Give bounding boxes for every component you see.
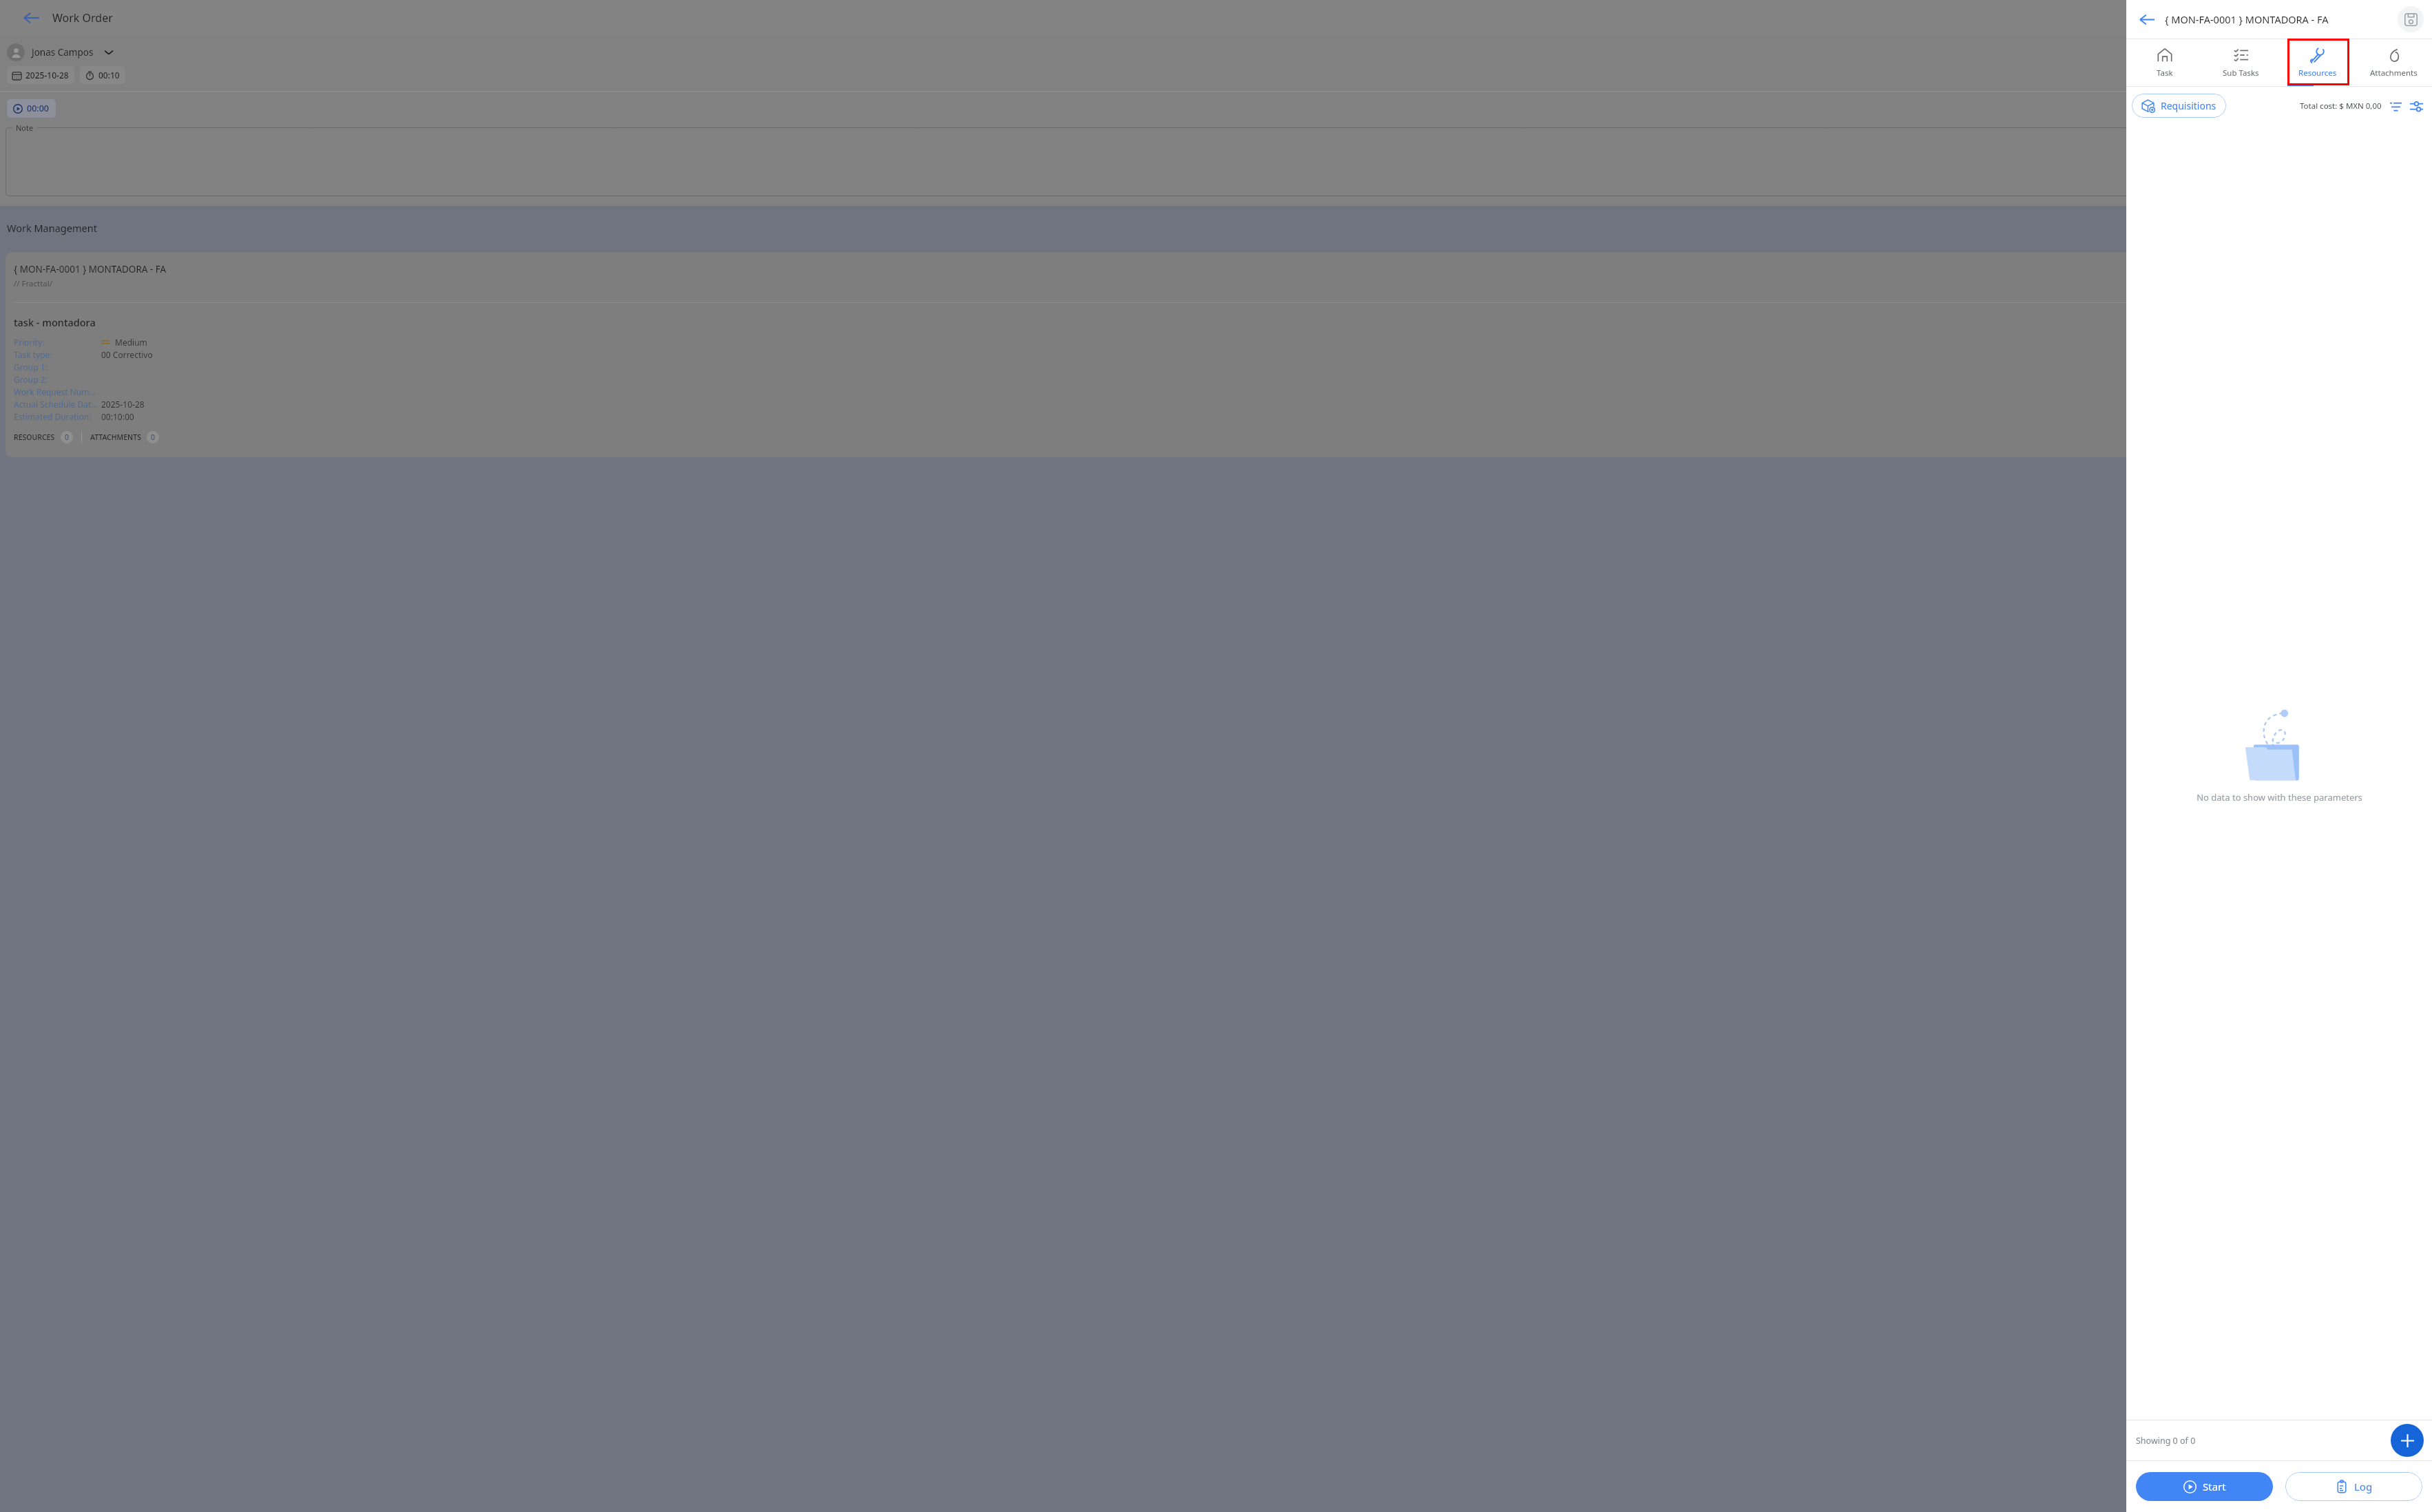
staticText: Actual Schedule Dat…	[14, 399, 98, 410]
button[interactable]: Back	[19, 6, 44, 30]
staticText: Showing 0 of 0	[2136, 1435, 2196, 1447]
staticText: Group 1:	[14, 361, 48, 372]
button[interactable]: Attachments	[2356, 39, 2432, 86]
staticText: 00:10:00	[101, 411, 134, 422]
staticText: Jonas Campos	[32, 46, 94, 59]
staticText: Sub Tasks	[2223, 67, 2259, 78]
button[interactable]: Sort	[2387, 97, 2404, 115]
staticText: Group 2:	[14, 374, 48, 385]
button[interactable]: Start	[2136, 1472, 2273, 1501]
button[interactable]: Add	[2391, 1424, 2424, 1457]
button[interactable]: 00:00	[7, 99, 56, 118]
button[interactable]: Requisitions	[2132, 94, 2226, 118]
staticText: Total cost: $ MXN 0,00	[2300, 101, 2382, 112]
button[interactable]: Task	[2126, 39, 2203, 86]
staticText: Priority:	[14, 337, 45, 348]
button[interactable]: Log	[2285, 1472, 2422, 1501]
staticText: Resources	[2298, 67, 2337, 78]
staticText: Attachments	[2370, 67, 2418, 78]
staticText: task - montadora	[14, 315, 96, 329]
staticText: 00:10	[98, 70, 120, 81]
button[interactable]: 2025-10-28	[7, 66, 74, 84]
staticText: Task	[2157, 67, 2173, 78]
staticText: Requisitions	[2161, 99, 2216, 112]
staticText: 2025-10-28	[25, 70, 69, 81]
staticText: Medium	[115, 337, 147, 348]
staticText: Log	[2354, 1480, 2373, 1493]
staticText: Start	[2203, 1480, 2226, 1493]
staticText: { MON-FA-0001 } MONTADORA - FA	[14, 263, 167, 275]
staticText: 00:00	[27, 103, 50, 114]
button[interactable]: Sub Tasks	[2203, 39, 2279, 86]
button[interactable]: Filter settings	[2407, 97, 2425, 115]
staticText: Task type:	[14, 349, 52, 360]
button[interactable]: 00:10	[80, 66, 125, 84]
button[interactable]: Resources	[2279, 39, 2356, 86]
staticText: Work Management	[7, 221, 97, 235]
staticText: 2025-10-28	[101, 399, 145, 410]
staticText: ATTACHMENTS	[90, 432, 141, 442]
staticText: 00 Correctivo	[101, 349, 153, 360]
staticText: { MON-FA-0001 } MONTADORA - FA	[2165, 12, 2329, 26]
staticText: RESOURCES	[14, 432, 55, 442]
staticText: Note	[16, 123, 34, 133]
staticText: Work Request Num…	[14, 386, 96, 397]
staticText: // Fracttal/	[14, 278, 53, 289]
button[interactable]: { MON-FA-0001 } MONTADORA - FA	[6, 252, 2432, 457]
staticText: Work Order	[52, 10, 113, 25]
staticText: No data to show with these parameters	[2197, 791, 2362, 804]
button[interactable]: Expand	[102, 45, 116, 59]
staticText: 0	[65, 432, 70, 442]
button[interactable]: Back	[2135, 7, 2159, 32]
staticText: Estimated Duration:	[14, 411, 92, 422]
staticText: 0	[151, 432, 156, 442]
button[interactable]: Save	[2398, 6, 2424, 32]
